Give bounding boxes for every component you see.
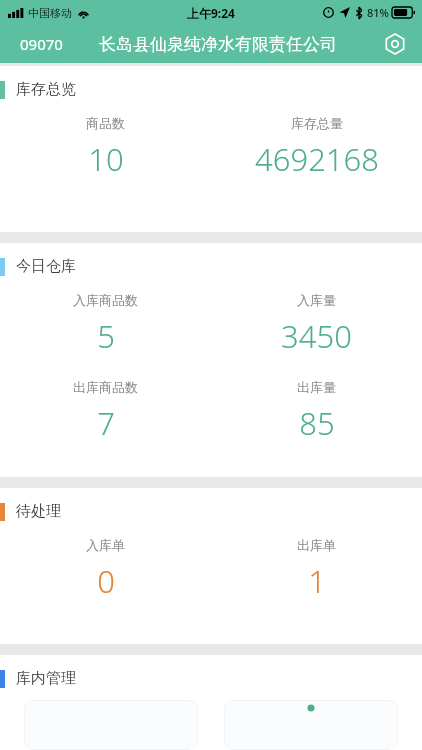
staticText: 5 xyxy=(97,315,115,357)
staticText: 中国移动 xyxy=(28,6,72,20)
staticText: 出库量 xyxy=(297,379,336,395)
button[interactable]: Settings xyxy=(378,27,412,61)
button[interactable]: 出库量 xyxy=(211,379,422,444)
button[interactable]: 库存总量 xyxy=(211,115,422,180)
staticText: 商品数 xyxy=(86,115,125,131)
staticText: 1 xyxy=(308,560,326,602)
button[interactable]: 入库商品数 xyxy=(0,292,211,357)
staticText: 上午9:24 xyxy=(187,5,235,21)
staticText: 出库单 xyxy=(297,537,336,553)
button[interactable]: 库存总览 xyxy=(0,66,422,232)
staticText: 待处理 xyxy=(16,502,61,521)
staticText: 81% xyxy=(367,5,389,20)
button[interactable]: 待处理 xyxy=(0,488,422,644)
staticText: 今日仓库 xyxy=(16,257,76,276)
staticText: 入库商品数 xyxy=(73,292,138,308)
button[interactable]: 今日仓库 xyxy=(0,243,422,477)
staticText: 出库商品数 xyxy=(73,379,138,395)
button[interactable]: 入库单 xyxy=(0,537,211,602)
staticText: 入库量 xyxy=(297,292,336,308)
staticText: 库内管理 xyxy=(16,669,76,688)
staticText: 4692168 xyxy=(255,138,379,180)
button[interactable]: 09070 xyxy=(20,34,63,54)
staticText: 0 xyxy=(97,560,115,602)
staticText: 7 xyxy=(97,402,115,444)
staticText: 库存总览 xyxy=(16,80,76,99)
staticText: 3450 xyxy=(281,315,352,357)
button[interactable]: 库内管理操作 xyxy=(224,700,398,750)
staticText: 入库单 xyxy=(86,537,125,553)
button[interactable]: 出库商品数 xyxy=(0,379,211,444)
staticText: 85 xyxy=(299,402,335,444)
button[interactable]: 商品数 xyxy=(0,115,211,180)
staticText: 长岛县仙泉纯净水有限责任公司 xyxy=(99,34,337,55)
button[interactable]: 入库量 xyxy=(211,292,422,357)
button[interactable]: 出库单 xyxy=(211,537,422,602)
staticText: 库存总量 xyxy=(291,115,343,131)
staticText: 10 xyxy=(88,138,124,180)
